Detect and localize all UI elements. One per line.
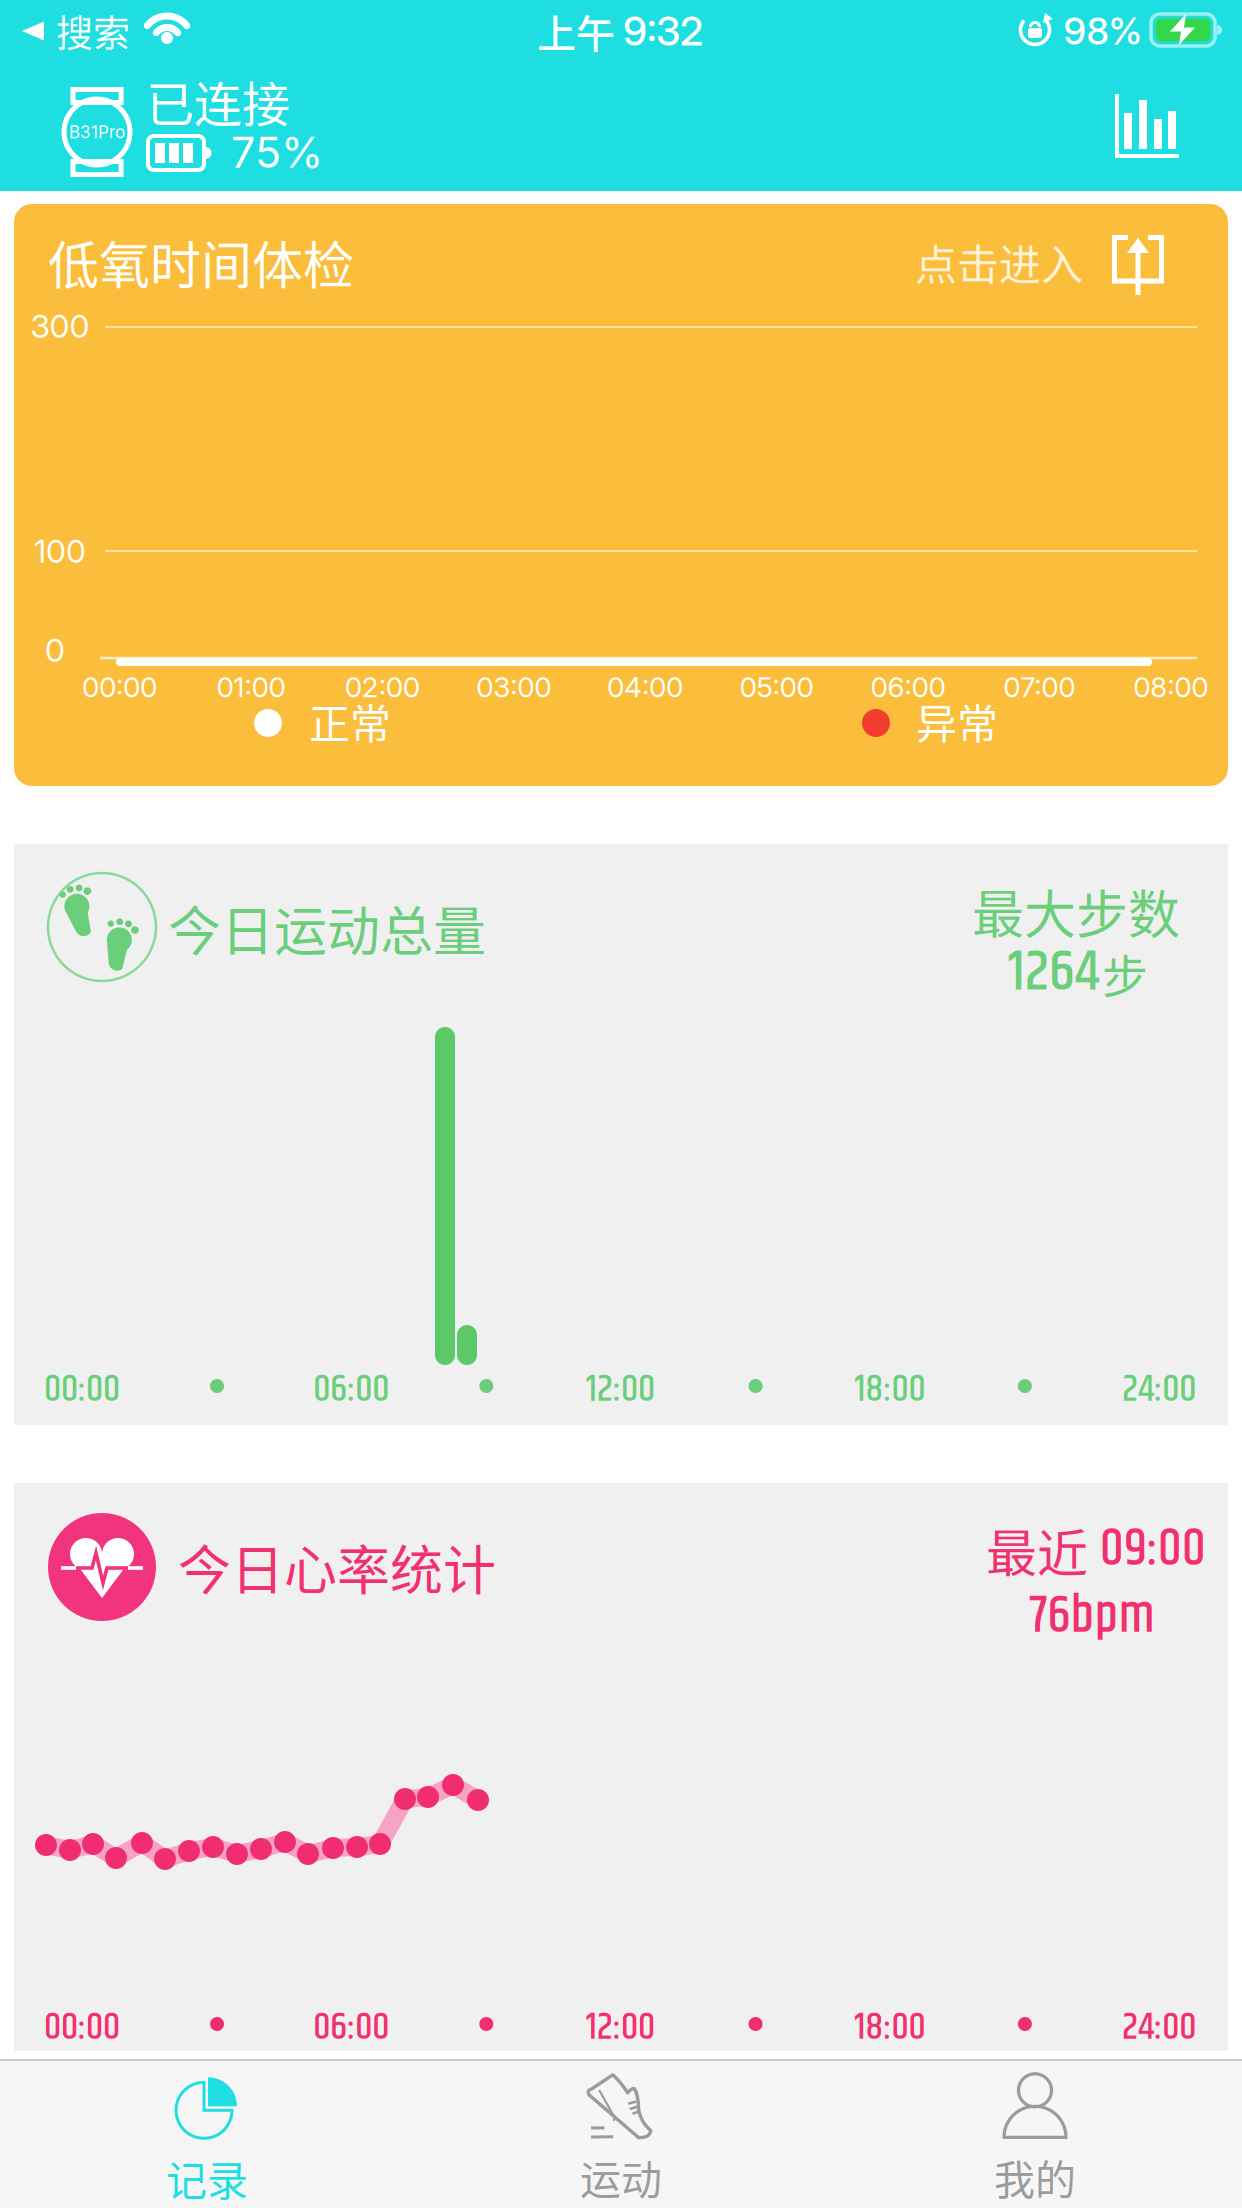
staticText: 100 [34,532,86,570]
staticText: 我的 [994,2147,1076,2207]
staticText: 24:00 [1122,1999,1196,2057]
button[interactable]: 运动 [451,2073,791,2207]
staticText: 06:00 [870,670,945,704]
staticText: 搜索 [56,4,130,58]
staticText: 08:00 [1133,670,1208,704]
staticText: B31Pro [69,122,125,142]
staticText: 0 [45,631,65,669]
staticText: 09:00 [1100,1510,1206,1590]
staticText: 低氧时间体检 [48,225,354,299]
staticText: 今日运动总量 [168,890,486,966]
staticText: 18:00 [854,1361,925,1419]
staticText: 00:00 [44,1361,120,1419]
button[interactable]: 我的 [865,2073,1205,2207]
staticText: 00:00 [44,1999,120,2057]
button[interactable]: 返回搜索 [22,4,130,58]
staticText: 已连接 [146,66,290,136]
staticText: 75% [231,126,323,178]
staticText: 04:00 [607,670,683,704]
staticText: 9:32 [623,7,703,55]
staticText: 运动 [580,2147,662,2207]
button[interactable]: 低氧时间体检，点击进入 [14,204,1228,786]
staticText: 24:00 [1122,1361,1196,1419]
staticText: 01:00 [216,670,285,704]
staticText: 06:00 [313,1999,389,2057]
staticText: 00:00 [82,670,157,704]
staticText: 上午 [537,3,615,59]
staticText: 05:00 [739,670,813,704]
staticText: 98% [1063,8,1142,54]
staticText: 步 [1102,940,1148,1006]
staticText: 07:00 [1003,670,1075,704]
staticText: 03:00 [476,670,551,704]
staticText: 记录 [166,2148,248,2208]
staticText: 今日心率统计 [178,1529,496,1605]
staticText: 76bpm [1029,1577,1154,1657]
staticText: 02:00 [345,670,420,704]
staticText: 最大步数 [972,873,1180,949]
staticText: 1264 [1008,929,1099,1017]
staticText: 最近 [986,1513,1088,1587]
staticText: 点击进入 [915,232,1083,292]
staticText: 正常 [309,691,391,751]
button[interactable]: 记录 [37,2073,377,2207]
staticText: 18:00 [854,1999,925,2057]
staticText: 300 [30,307,89,345]
staticText: 12:00 [586,1361,655,1419]
staticText: 12:00 [586,1999,655,2057]
staticText: 异常 [916,691,998,751]
staticText: 06:00 [313,1361,389,1419]
button[interactable]: 统计图表 [1115,94,1181,158]
